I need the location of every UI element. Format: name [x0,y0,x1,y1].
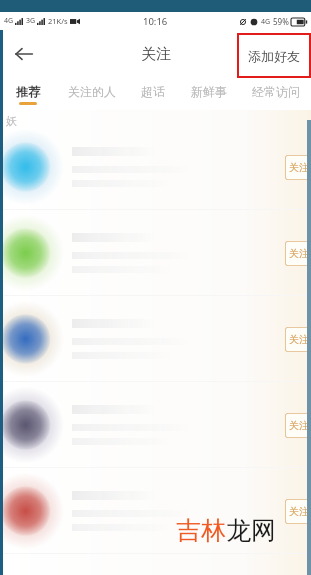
staticText: 关注 [141,45,171,64]
button[interactable]: 经常访问 [240,78,311,110]
staticText: 经常访问 [252,84,300,99]
button[interactable]: 关注 [0,296,311,382]
button[interactable]: 推荐 [0,78,56,110]
button[interactable]: 添加好友 [239,35,309,76]
button[interactable]: 关注 [0,468,311,554]
staticText: 4G [4,16,14,26]
staticText: 妖 [6,114,17,128]
button[interactable]: 关注 [0,210,311,296]
staticText: 59% [273,16,289,27]
staticText: 关注 [289,247,309,260]
staticText: 新鲜事 [191,84,227,99]
button[interactable]: 关注 [285,241,311,266]
staticText: 龙网 [226,515,276,546]
button[interactable]: 关注 [0,382,311,468]
staticText: 关注 [289,161,309,174]
staticText: 关注 [289,419,309,432]
staticText: 关注 [289,505,309,518]
staticText: 吉林 [176,515,226,546]
button[interactable]: 关注 [285,327,311,352]
staticText: 3G [26,16,36,26]
button[interactable]: 关注 [285,499,311,524]
button[interactable]: 关注 [0,124,311,210]
staticText: 关注的人 [68,84,116,99]
button[interactable]: 超话 [128,78,178,110]
staticText: 超话 [141,84,165,99]
staticText: 10:16 [143,15,168,28]
button[interactable]: 关注 [285,155,311,180]
button[interactable]: Back [0,30,48,78]
staticText: 推荐 [16,84,40,99]
button[interactable]: 新鲜事 [178,78,240,110]
staticText: 21K/s [48,16,68,26]
staticText: 4G [261,17,271,27]
staticText: 添加好友 [248,48,300,64]
staticText: 关注 [289,333,309,346]
button[interactable]: 关注 [285,413,311,438]
button[interactable]: 关注的人 [56,78,128,110]
